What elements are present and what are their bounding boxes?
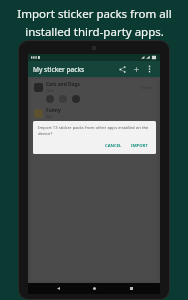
button[interactable]: Flowers [31,130,157,156]
staticText: 12kb [46,88,55,93]
button[interactable]: Cats and Dogs [31,79,157,105]
staticText: 1 sticker [140,85,154,90]
button[interactable]: More options [143,63,155,75]
button[interactable]: Home [87,283,101,294]
staticText: Import 13 sticker packs from other apps … [38,125,151,137]
button[interactable]: Recent apps [124,283,138,294]
button[interactable]: CANCEL [102,142,125,150]
button[interactable]: Share [115,62,129,76]
staticText: Flowers [46,132,65,139]
staticText: IMPORT [131,143,148,149]
staticText: Funny [46,107,61,114]
staticText: Cats and Dogs [46,81,80,88]
button[interactable]: Funny [31,105,157,130]
staticText: My sticker packs [33,65,85,74]
button[interactable]: Add sticker pack [129,62,143,76]
button[interactable]: Back [51,283,65,294]
staticText: installed third-party apps. [25,24,164,40]
staticText: CANCEL [105,143,122,149]
staticText: 8kb [46,114,53,119]
button[interactable]: IMPORT [128,142,151,150]
staticText: Import sticker packs from all [17,6,172,22]
